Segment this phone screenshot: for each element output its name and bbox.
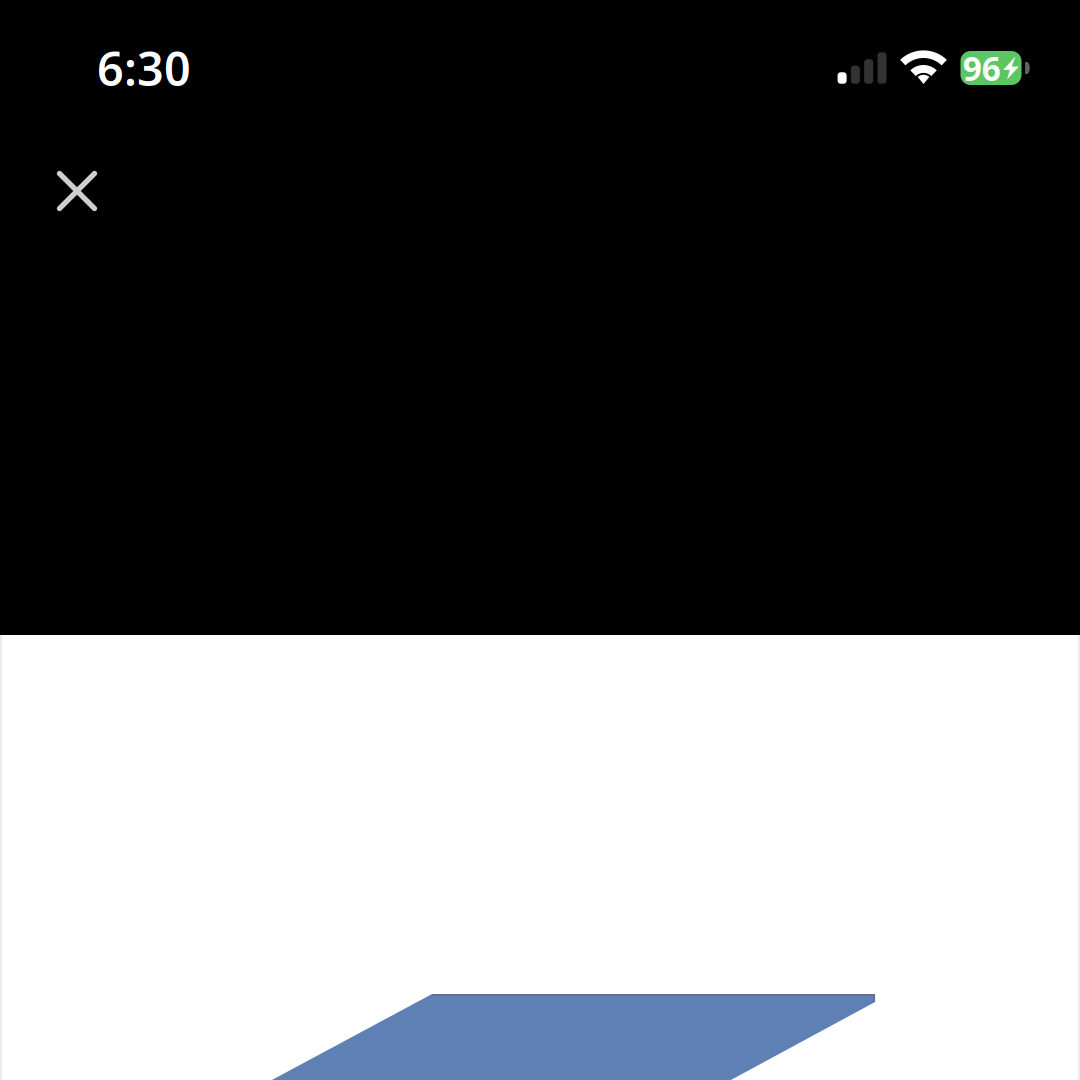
staticText: 6:30: [97, 37, 191, 99]
staticText: 96: [963, 46, 1001, 90]
button[interactable]: Close: [34, 148, 120, 234]
